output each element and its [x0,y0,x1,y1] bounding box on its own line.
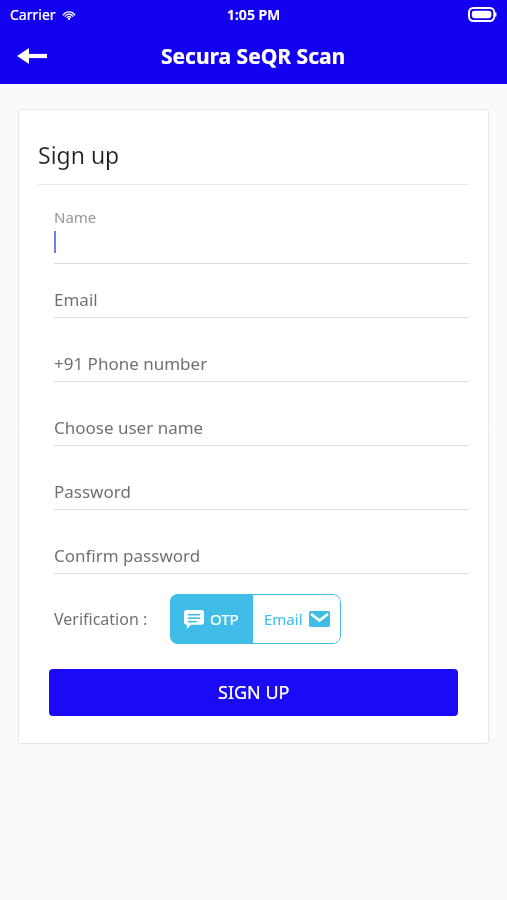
staticText: SIGN UP [218,680,290,705]
button[interactable]: Password [54,480,469,510]
button[interactable]: Back [8,32,56,80]
button[interactable]: +91 Phone number [54,352,469,382]
button[interactable]: OTP [170,594,253,644]
staticText: Carrier [10,5,56,24]
staticText: Email [54,288,98,311]
staticText: Password [54,480,131,503]
staticText: OTP [210,609,239,629]
button[interactable]: Choose user name [54,416,469,446]
staticText: Email [264,609,303,629]
button[interactable]: SIGN UP [49,669,458,716]
staticText: +91 Phone number [54,352,208,375]
staticText: 1:05 PM [227,5,281,24]
staticText: Secura SeQR Scan [161,42,346,71]
staticText: Sign up [38,139,120,170]
staticText: Choose user name [54,416,204,439]
button[interactable]: Confirm password [54,544,469,574]
button[interactable]: Email [253,594,341,644]
staticText: Confirm password [54,544,201,567]
button[interactable]: Email [54,288,469,318]
staticText: Verification : [54,608,148,630]
staticText: Name [54,207,97,227]
